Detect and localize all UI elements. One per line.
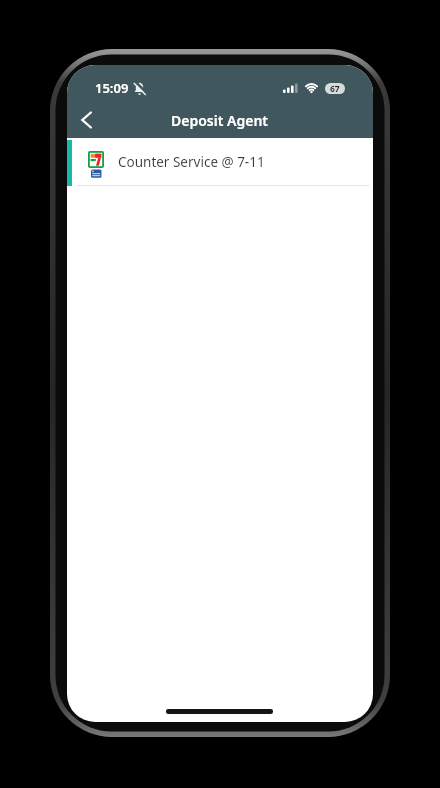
staticText: 67 [330,83,340,94]
button[interactable]: Counter Service @ 7-11 [67,138,373,186]
staticText: 15:09 [95,79,129,97]
staticText: Deposit Agent [171,111,269,130]
button[interactable] [75,109,97,131]
staticText: Counter Service @ 7-11 [118,153,265,171]
